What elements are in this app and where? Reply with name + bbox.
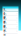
staticText: › — [16, 12, 17, 15]
staticText: Row — [3, 26, 6, 36]
staticText: › — [16, 16, 17, 20]
staticText: Row — [3, 17, 6, 28]
staticText: › — [16, 25, 17, 28]
staticText: Row — [3, 21, 6, 32]
staticText: › — [16, 29, 17, 33]
staticText: Row — [3, 8, 6, 19]
staticText: Row — [3, 13, 6, 23]
staticText: › — [16, 20, 17, 24]
